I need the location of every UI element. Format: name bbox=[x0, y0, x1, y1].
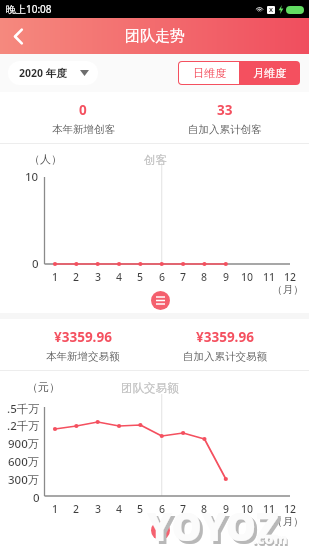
staticText: YOYOZ bbox=[150, 503, 282, 550]
staticText: X bbox=[269, 6, 274, 14]
staticText: 8 bbox=[201, 502, 208, 516]
staticText: 300万 bbox=[8, 472, 40, 488]
staticText: 9 bbox=[223, 270, 230, 284]
staticText: .2千万 bbox=[7, 418, 40, 434]
staticText: 2 bbox=[73, 502, 80, 516]
button[interactable]: Back bbox=[0, 18, 36, 54]
button[interactable]: 日维度 bbox=[179, 62, 239, 84]
staticText: 1 bbox=[52, 270, 59, 284]
staticText: 2020 年度 bbox=[19, 66, 67, 80]
staticText: 10 bbox=[241, 270, 254, 284]
button[interactable]: 月维度 bbox=[239, 62, 299, 84]
button[interactable]: 2020 年度 bbox=[8, 61, 98, 85]
staticText: （月） bbox=[272, 515, 304, 528]
staticText: 10 bbox=[241, 502, 254, 516]
staticText: 4 bbox=[116, 270, 123, 284]
staticText: .com bbox=[254, 531, 289, 550]
staticText: 自加入累计创客 bbox=[188, 123, 262, 136]
button[interactable]: Chart menu bbox=[151, 291, 170, 310]
staticText: 创客 bbox=[144, 153, 167, 167]
staticText: 日维度 bbox=[193, 66, 226, 80]
staticText: 600万 bbox=[8, 454, 40, 470]
staticText: 11 bbox=[263, 270, 276, 284]
staticText: 11 bbox=[263, 502, 276, 516]
staticText: 自加入累计交易额 bbox=[183, 350, 267, 363]
staticText: 0 bbox=[79, 101, 87, 119]
staticText: 8 bbox=[201, 270, 208, 284]
staticText: 月维度 bbox=[253, 66, 286, 80]
staticText: 6 bbox=[159, 502, 166, 516]
staticText: 0 bbox=[32, 256, 39, 272]
staticText: 10 bbox=[25, 169, 39, 185]
staticText: 2 bbox=[73, 270, 80, 284]
staticText: .5千万 bbox=[7, 401, 40, 417]
button[interactable]: Chart menu bbox=[151, 521, 170, 540]
staticText: 12 bbox=[284, 502, 297, 516]
staticText: 9 bbox=[223, 502, 230, 516]
staticText: 晚上10:08 bbox=[6, 2, 52, 16]
staticText: YOYOZ bbox=[147, 500, 279, 550]
staticText: 7 bbox=[180, 502, 187, 516]
staticText: （月） bbox=[272, 283, 304, 296]
staticText: 4 bbox=[116, 502, 123, 516]
staticText: 3 bbox=[95, 502, 102, 516]
staticText: 3 bbox=[95, 270, 102, 284]
staticText: 团队走势 bbox=[125, 27, 185, 46]
staticText: ¥3359.96 bbox=[54, 328, 112, 346]
staticText: 本年新增交易额 bbox=[46, 350, 120, 363]
staticText: （人） bbox=[29, 152, 62, 166]
staticText: 5 bbox=[137, 270, 144, 284]
staticText: 6 bbox=[159, 270, 166, 284]
staticText: 900万 bbox=[8, 436, 40, 452]
staticText: 1 bbox=[52, 502, 59, 516]
staticText: 团队交易额 bbox=[121, 381, 179, 395]
staticText: 本年新增创客 bbox=[52, 123, 115, 136]
staticText: ¥3359.96 bbox=[196, 328, 254, 346]
staticText: 0 bbox=[33, 490, 40, 506]
staticText: 33 bbox=[217, 101, 233, 119]
staticText: （元） bbox=[27, 380, 60, 394]
staticText: 7 bbox=[180, 270, 187, 284]
staticText: .com bbox=[253, 529, 288, 548]
staticText: 5 bbox=[137, 502, 144, 516]
staticText: 12 bbox=[284, 270, 297, 284]
